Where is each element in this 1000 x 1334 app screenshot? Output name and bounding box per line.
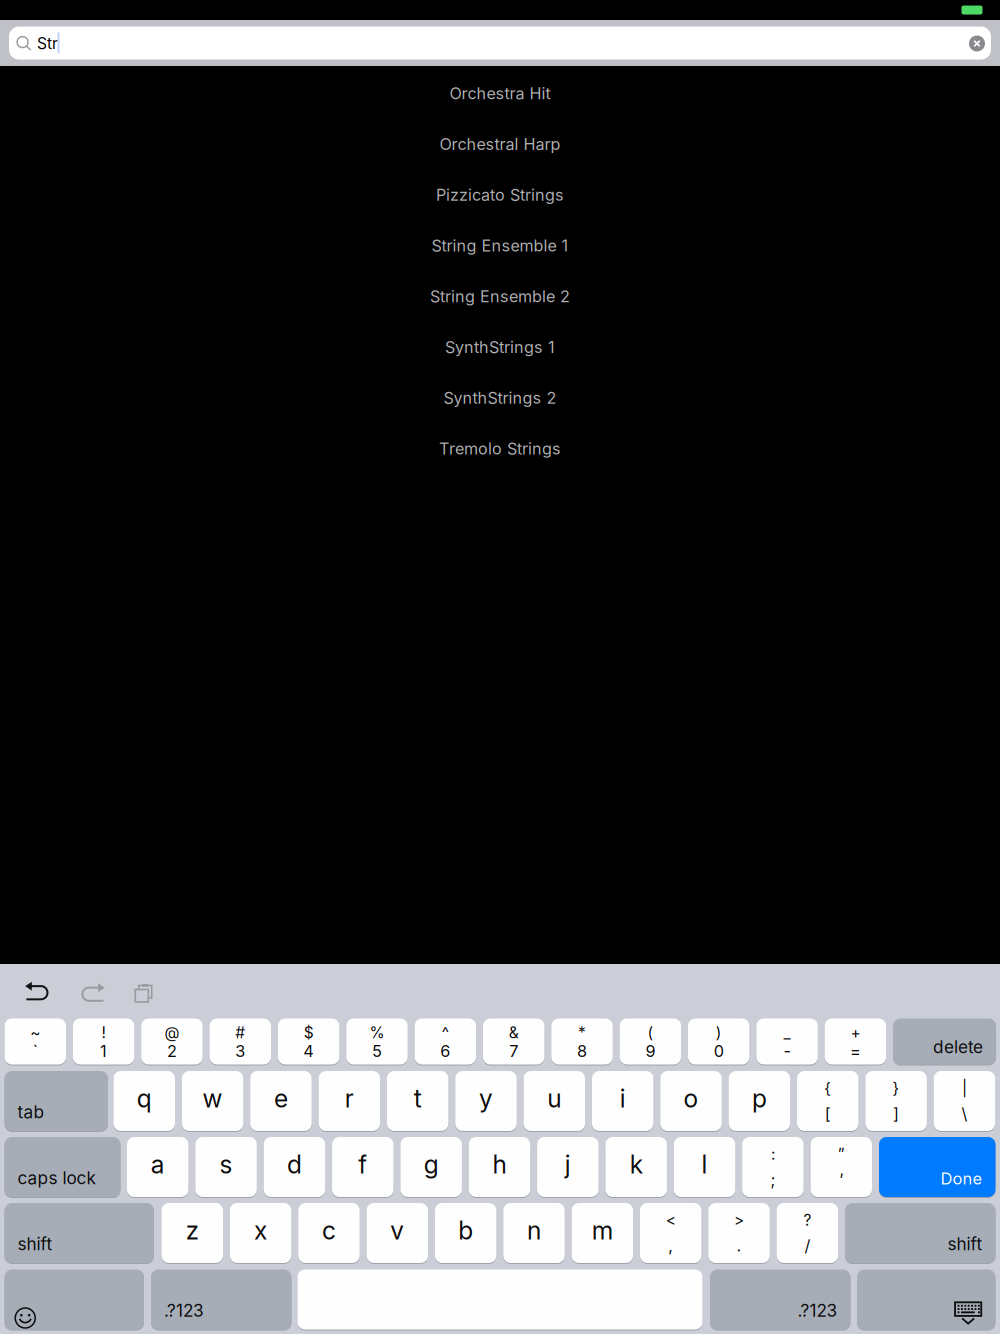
button[interactable]: <: [640, 1203, 701, 1263]
button[interactable]: tab: [4, 1071, 108, 1131]
button[interactable]: Undo: [17, 971, 61, 1015]
button[interactable]: r: [318, 1071, 380, 1131]
button[interactable]: ?: [777, 1203, 838, 1263]
button[interactable]: Orchestra Hit: [0, 68, 1000, 118]
button[interactable]: Emoji: [4, 1269, 144, 1329]
staticText: g: [424, 1149, 439, 1179]
button[interactable]: +: [825, 1018, 886, 1064]
button[interactable]: Done: [879, 1137, 995, 1197]
button[interactable]: e: [250, 1071, 312, 1131]
button[interactable]: (: [620, 1018, 681, 1064]
staticText: _: [784, 1023, 791, 1042]
button[interactable]: d: [264, 1137, 325, 1197]
staticText: 1: [100, 1041, 107, 1061]
button[interactable]: Tremolo Strings: [0, 424, 1000, 474]
button[interactable]: u: [524, 1071, 585, 1131]
button[interactable]: caps lock: [4, 1137, 120, 1197]
button[interactable]: Hide keyboard: [857, 1269, 995, 1329]
button[interactable]: #: [209, 1018, 271, 1064]
button[interactable]: b: [435, 1203, 496, 1263]
staticText: @: [164, 1023, 179, 1042]
staticText: l: [701, 1149, 707, 1179]
button[interactable]: i: [592, 1071, 653, 1131]
button[interactable]: SynthStrings 2: [0, 373, 1000, 423]
button[interactable]: g: [400, 1137, 462, 1197]
staticText: SynthStrings 2: [443, 388, 556, 407]
button[interactable]: p: [729, 1071, 790, 1131]
staticText: o: [683, 1083, 698, 1113]
button[interactable]: SynthStrings 1: [0, 322, 1000, 372]
button[interactable]: n: [503, 1203, 565, 1263]
button[interactable]: shift: [845, 1203, 995, 1263]
button[interactable]: f: [332, 1137, 393, 1197]
staticText: Orchestral Harp: [439, 134, 560, 154]
staticText: =: [850, 1041, 861, 1061]
button[interactable]: .?123: [710, 1269, 850, 1329]
button[interactable]: ): [688, 1018, 749, 1064]
button[interactable]: y: [455, 1071, 517, 1131]
button[interactable]: Paste: [122, 972, 166, 1016]
button[interactable]: >: [708, 1203, 770, 1263]
button[interactable]: q: [113, 1071, 175, 1131]
button[interactable]: *: [551, 1018, 613, 1064]
staticText: |: [962, 1079, 967, 1097]
button[interactable]: .?123: [151, 1269, 291, 1329]
staticText: r: [345, 1083, 354, 1113]
button[interactable]: t: [387, 1071, 448, 1131]
button[interactable]: String Ensemble 2: [0, 271, 1000, 321]
button[interactable]: m: [572, 1203, 633, 1263]
staticText: 0: [714, 1041, 724, 1061]
button[interactable]: String Ensemble 1: [0, 221, 1000, 271]
staticText: d: [287, 1149, 302, 1179]
button[interactable]: !: [73, 1018, 134, 1064]
staticText: 9: [645, 1041, 655, 1061]
staticText: p: [752, 1083, 767, 1113]
staticText: ^: [442, 1023, 449, 1042]
button[interactable]: a: [127, 1137, 188, 1197]
button[interactable]: }: [865, 1071, 927, 1131]
button[interactable]: delete: [893, 1018, 996, 1064]
button[interactable]: {: [797, 1071, 858, 1131]
staticText: Tremolo Strings: [439, 439, 561, 458]
staticText: .?123: [164, 1300, 204, 1321]
button[interactable]: Orchestral Harp: [0, 119, 1000, 169]
button[interactable]: %: [346, 1018, 408, 1064]
button[interactable]: z: [161, 1203, 223, 1263]
button[interactable]: space: [297, 1269, 702, 1329]
button[interactable]: Redo: [69, 973, 113, 1017]
staticText: 4: [303, 1041, 314, 1061]
button[interactable]: v: [366, 1203, 428, 1263]
button[interactable]: c: [298, 1203, 360, 1263]
button[interactable]: shift: [4, 1203, 154, 1263]
staticText: .: [736, 1236, 741, 1255]
button[interactable]: o: [660, 1071, 722, 1131]
button[interactable]: x: [230, 1203, 291, 1263]
button[interactable]: h: [469, 1137, 530, 1197]
button[interactable]: _: [756, 1018, 818, 1064]
button[interactable]: Pizzicato Strings: [0, 170, 1000, 220]
staticText: !: [102, 1023, 106, 1042]
button[interactable]: Clear search: [960, 26, 994, 60]
button[interactable]: $: [278, 1018, 339, 1064]
button[interactable]: |: [934, 1071, 995, 1131]
staticText: shift: [947, 1234, 982, 1254]
button[interactable]: w: [182, 1071, 243, 1131]
staticText: {: [824, 1079, 831, 1097]
button[interactable]: k: [605, 1137, 667, 1197]
button[interactable]: ~: [4, 1018, 66, 1064]
button[interactable]: ^: [415, 1018, 476, 1064]
button[interactable]: l: [674, 1137, 735, 1197]
button[interactable]: &: [483, 1018, 544, 1064]
button[interactable]: j: [537, 1137, 599, 1197]
button[interactable]: @: [141, 1018, 203, 1064]
staticText: ;: [770, 1170, 775, 1189]
button[interactable]: :: [742, 1137, 804, 1197]
staticText: v: [390, 1215, 404, 1245]
staticText: +: [850, 1023, 860, 1042]
button[interactable]: ”: [810, 1137, 872, 1197]
staticText: Orchestra Hit: [449, 83, 550, 103]
button[interactable]: s: [195, 1137, 257, 1197]
staticText: `: [33, 1041, 38, 1061]
staticText: h: [492, 1149, 506, 1179]
button[interactable]: Str: [37, 25, 97, 61]
